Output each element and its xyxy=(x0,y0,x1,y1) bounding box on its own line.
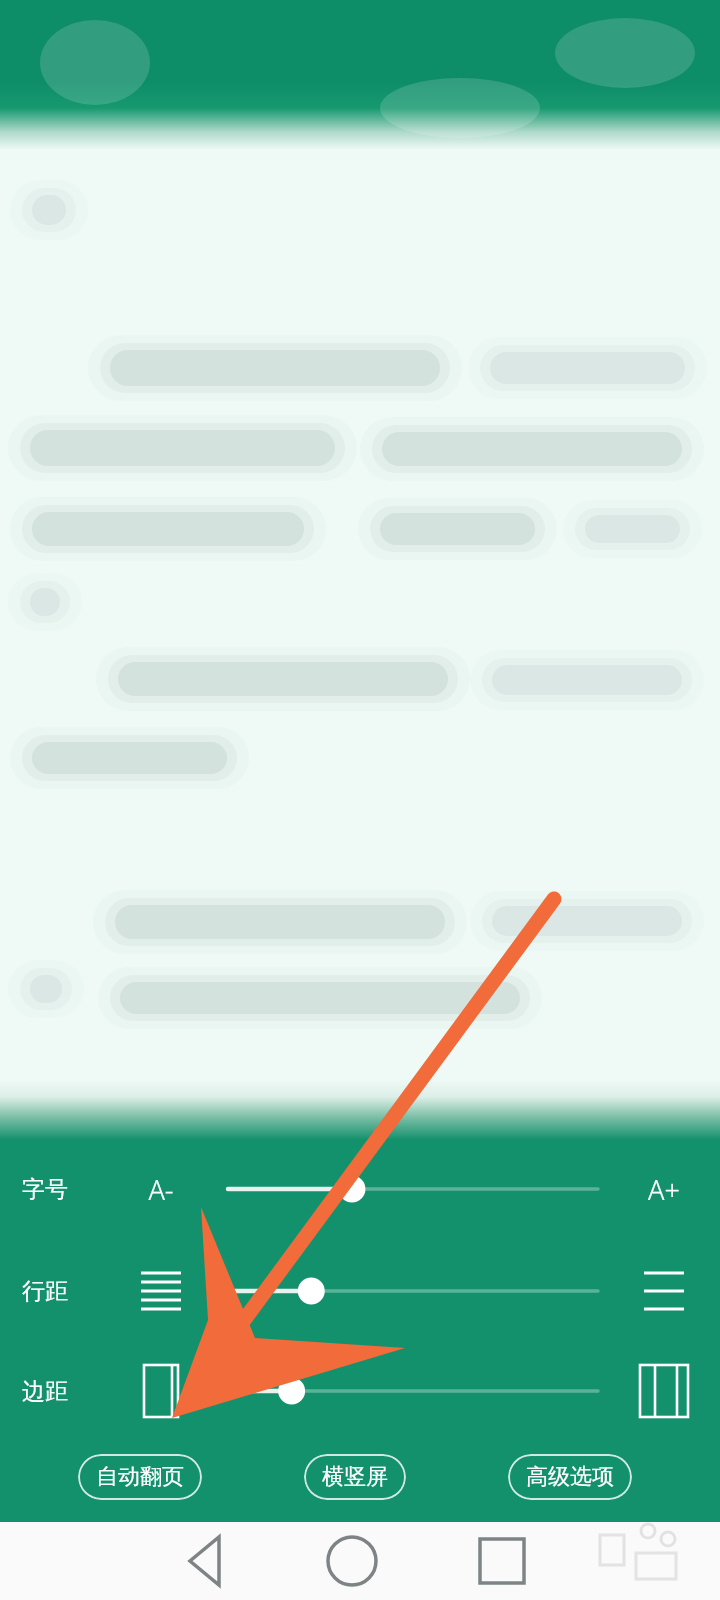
button[interactable]: 边距 slider xyxy=(222,1368,604,1414)
staticText: 行距 xyxy=(22,1277,68,1306)
button[interactable]: Decrease 字号 xyxy=(133,1161,189,1217)
button[interactable]: 横竖屏 xyxy=(304,1454,406,1500)
button[interactable]: Increase 行距 xyxy=(636,1263,692,1319)
button[interactable]: 行距 slider xyxy=(222,1268,604,1314)
button[interactable]: Decrease 边距 xyxy=(133,1363,189,1419)
button[interactable]: 字号 slider xyxy=(222,1166,604,1212)
button[interactable]: Increase 字号 xyxy=(636,1161,692,1217)
staticText: A- xyxy=(148,1171,174,1208)
button[interactable]: 自动翻页 xyxy=(78,1454,202,1500)
button[interactable]: 高级选项 xyxy=(508,1454,632,1500)
staticText: 高级选项 xyxy=(526,1463,614,1491)
staticText: 横竖屏 xyxy=(322,1463,388,1491)
staticText: 边距 xyxy=(22,1377,68,1406)
button[interactable]: Back xyxy=(165,1522,245,1600)
button[interactable]: Home xyxy=(312,1522,392,1600)
button[interactable]: Increase 边距 xyxy=(636,1363,692,1419)
button[interactable]: Recents xyxy=(462,1522,542,1600)
staticText: 自动翻页 xyxy=(96,1463,184,1491)
staticText: A+ xyxy=(648,1171,680,1208)
staticText: 字号 xyxy=(22,1175,68,1204)
button[interactable]: Decrease 行距 xyxy=(133,1263,189,1319)
